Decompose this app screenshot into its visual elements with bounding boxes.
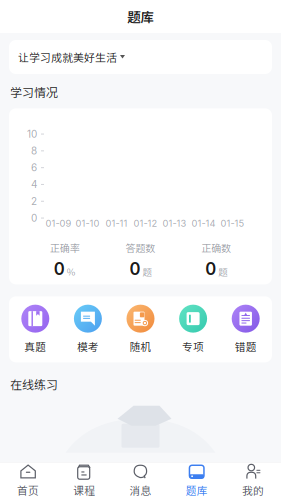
- staticText: 题库: [127, 7, 153, 26]
- button[interactable]: 首页: [0, 462, 56, 500]
- staticText: 01-13: [162, 218, 186, 229]
- button[interactable]: 课程: [56, 462, 112, 500]
- button[interactable]: 随机: [114, 305, 167, 354]
- staticText: 0: [205, 259, 216, 279]
- staticText: 模考: [77, 339, 99, 354]
- staticText: 01-15: [220, 218, 244, 229]
- staticText: %: [67, 265, 76, 278]
- button[interactable]: 让学习成就美好生活: [9, 40, 272, 74]
- staticText: 0: [129, 259, 140, 279]
- staticText: 正确率: [50, 240, 80, 255]
- button[interactable]: 题库: [169, 462, 225, 500]
- staticText: 错题: [235, 339, 257, 354]
- staticText: 题库: [186, 482, 208, 498]
- button[interactable]: 我的: [225, 462, 281, 500]
- button[interactable]: 错题: [219, 305, 272, 354]
- staticText: 8: [31, 145, 37, 157]
- staticText: 2: [31, 195, 37, 207]
- staticText: 课程: [73, 482, 95, 498]
- button[interactable]: 模考: [62, 305, 114, 354]
- staticText: 消息: [129, 482, 151, 498]
- staticText: 01-11: [105, 218, 127, 229]
- staticText: 题: [218, 265, 227, 278]
- staticText: 10: [27, 128, 37, 140]
- staticText: 01-14: [191, 218, 215, 229]
- staticText: 0: [54, 259, 65, 279]
- staticText: 正确数: [201, 240, 231, 255]
- staticText: 01-10: [75, 218, 99, 229]
- button[interactable]: 专项: [167, 305, 219, 354]
- staticText: 在线练习: [10, 375, 58, 393]
- staticText: 真题: [24, 339, 46, 354]
- button[interactable]: 真题: [9, 305, 62, 354]
- staticText: 首页: [17, 482, 39, 498]
- staticText: 题: [142, 265, 151, 278]
- staticText: 学习情况: [10, 83, 58, 100]
- staticText: 4: [31, 178, 37, 190]
- staticText: 0: [31, 212, 37, 224]
- staticText: 专项: [182, 339, 204, 354]
- staticText: 答题数: [125, 240, 155, 255]
- staticText: 让学习成就美好生活: [18, 49, 117, 65]
- staticText: 随机: [129, 339, 151, 354]
- staticText: 我的: [242, 482, 264, 498]
- staticText: 01-09: [45, 218, 71, 229]
- staticText: 6: [31, 162, 37, 174]
- button[interactable]: 消息: [112, 462, 169, 500]
- staticText: 01-12: [133, 218, 157, 229]
